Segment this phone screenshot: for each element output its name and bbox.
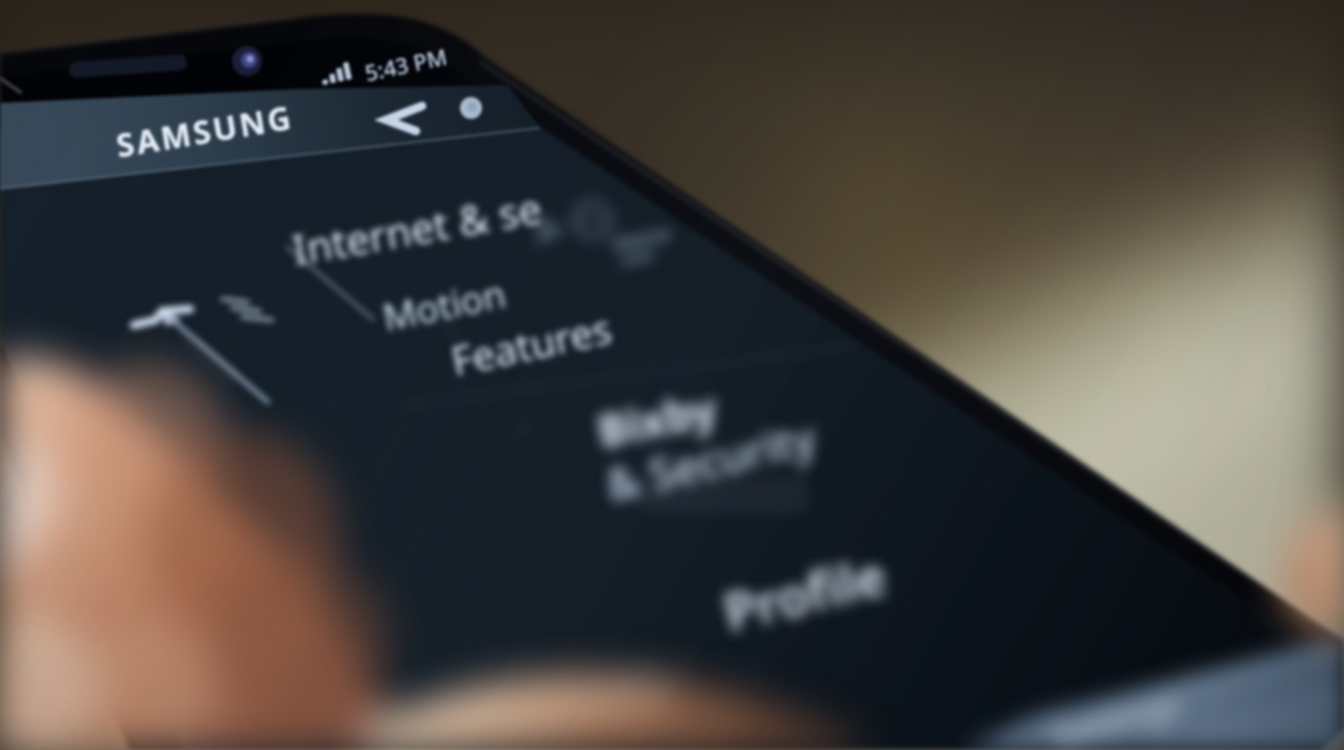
button[interactable]: Bixby and Security — [540, 382, 880, 510]
button[interactable]: More options — [448, 86, 502, 136]
button[interactable]: Sort list — [210, 284, 280, 330]
button[interactable]: Status bar — [0, 20, 520, 94]
button[interactable]: Navigate back — [368, 92, 444, 148]
button[interactable]: Features — [380, 310, 780, 386]
button[interactable]: SAMSUNG — [0, 84, 540, 212]
button[interactable]: Motion — [300, 262, 700, 322]
button[interactable]: Share — [116, 290, 210, 346]
button[interactable]: Internet and services — [110, 190, 700, 280]
button[interactable]: Settings — [900, 628, 1344, 750]
button[interactable]: Profile — [660, 546, 960, 648]
button[interactable]: Device care — [520, 192, 700, 268]
